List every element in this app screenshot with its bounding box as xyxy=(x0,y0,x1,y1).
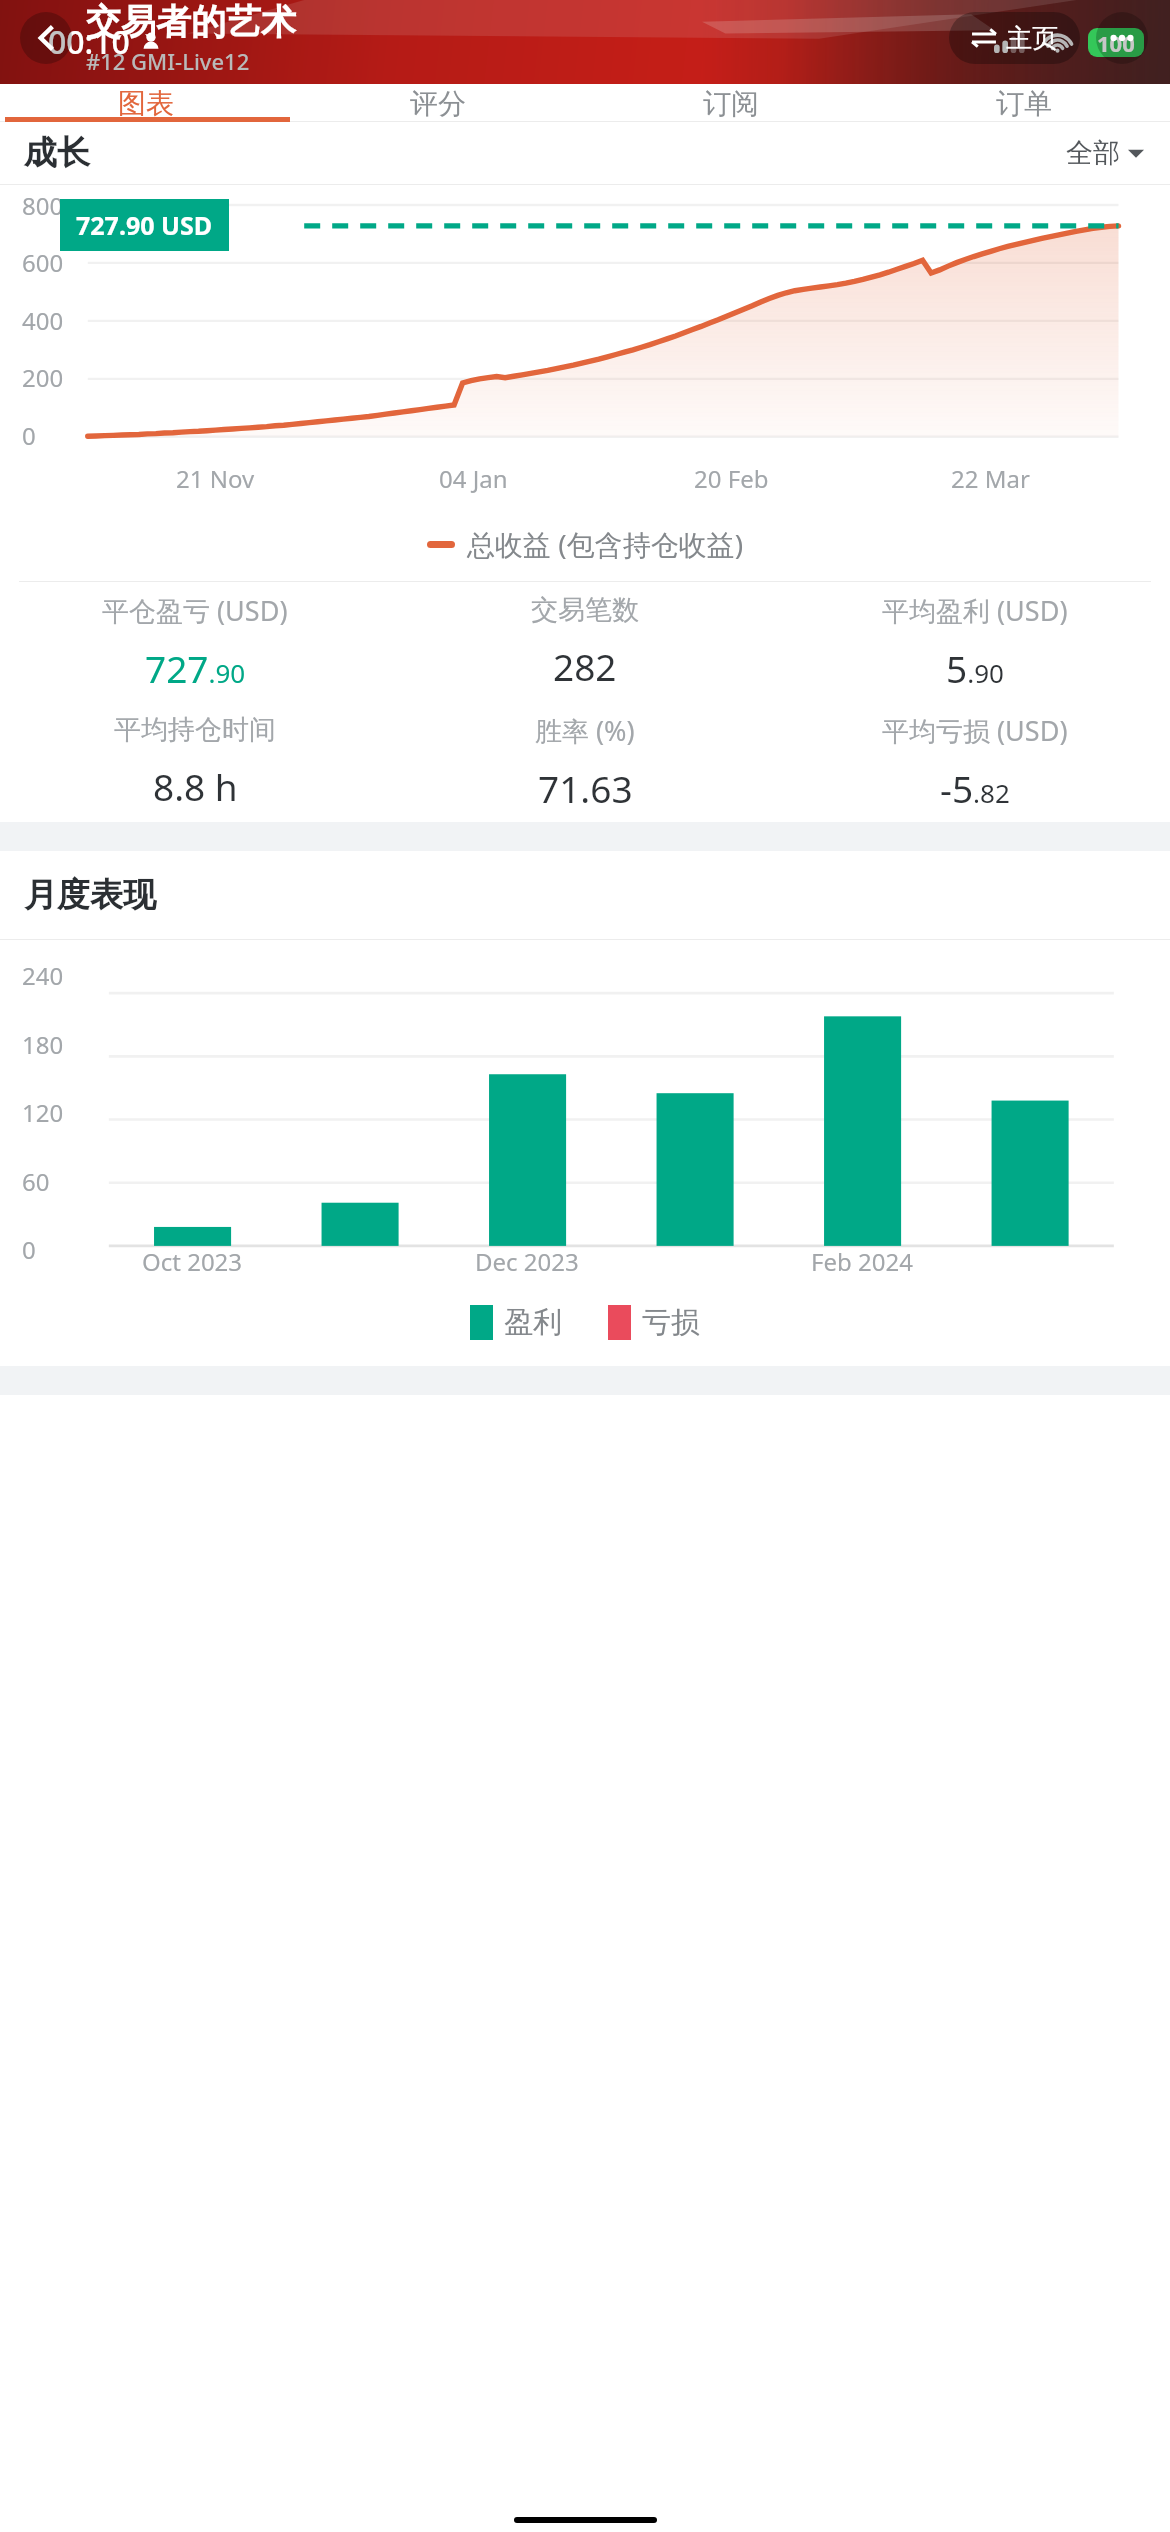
staticText: 21 Nov xyxy=(176,462,255,495)
staticText: 100 xyxy=(1097,28,1135,57)
staticText: 282 xyxy=(553,641,617,691)
staticText: 盈利 xyxy=(504,1304,562,1341)
staticText: 120 xyxy=(22,1096,64,1129)
staticText: 平均持仓时间 xyxy=(114,713,276,747)
staticText: 订单 xyxy=(996,86,1052,121)
button[interactable]: 图表 xyxy=(0,84,292,122)
staticText: 成长 xyxy=(24,132,90,174)
staticText: 交易者的艺术 xyxy=(86,0,296,44)
staticText: 图表 xyxy=(118,86,174,121)
staticText: 04 Jan xyxy=(439,462,508,495)
staticText: 20 Feb xyxy=(694,462,769,495)
staticText: 月度表现 xyxy=(24,874,156,916)
staticText: 00:10 xyxy=(48,20,130,64)
staticText: 22 Mar xyxy=(951,462,1030,495)
staticText: -5.82 xyxy=(940,763,1010,813)
button[interactable]: 全部 xyxy=(1066,136,1144,170)
button[interactable]: 订单 xyxy=(877,84,1170,122)
staticText: 800 xyxy=(22,189,64,222)
staticText: 240 xyxy=(22,959,64,992)
staticText: #12 GMI-Live12 xyxy=(86,46,250,76)
staticText: 亏损 xyxy=(642,1304,700,1341)
staticText: Dec 2023 xyxy=(475,1245,579,1278)
staticText: Feb 2024 xyxy=(811,1245,913,1278)
staticText: 8.8 h xyxy=(153,761,238,811)
button[interactable]: 评分 xyxy=(292,84,584,122)
staticText: 总收益 (包含持仓收益) xyxy=(467,525,744,563)
staticText: 5.90 xyxy=(946,643,1004,693)
staticText: 交易笔数 xyxy=(531,593,639,627)
staticText: 727.90 USD xyxy=(76,208,213,242)
staticText: 订阅 xyxy=(703,86,759,121)
button[interactable]: 主页 xyxy=(949,12,1080,64)
staticText: 全部 xyxy=(1066,136,1120,170)
staticText: 60 xyxy=(22,1165,50,1198)
staticText: 71.63 xyxy=(538,763,633,813)
staticText: 平仓盈亏 (USD) xyxy=(102,592,288,629)
staticText: Oct 2023 xyxy=(142,1245,243,1278)
staticText: 0 xyxy=(22,1233,36,1266)
staticText: 200 xyxy=(22,361,64,394)
staticText: 胜率 (%) xyxy=(535,712,635,749)
staticText: 400 xyxy=(22,304,64,337)
staticText: 平均亏损 (USD) xyxy=(882,712,1068,749)
button[interactable]: More options xyxy=(1096,12,1148,64)
staticText: 平均盈利 (USD) xyxy=(882,592,1068,629)
staticText: 0 xyxy=(22,419,36,452)
button[interactable]: Back xyxy=(20,12,72,64)
staticText: 180 xyxy=(22,1028,64,1061)
button[interactable]: 订阅 xyxy=(584,84,877,122)
staticText: 主页 xyxy=(1006,22,1058,55)
staticText: 727.90 xyxy=(145,643,246,693)
staticText: 评分 xyxy=(410,86,466,121)
staticText: 600 xyxy=(22,246,64,279)
